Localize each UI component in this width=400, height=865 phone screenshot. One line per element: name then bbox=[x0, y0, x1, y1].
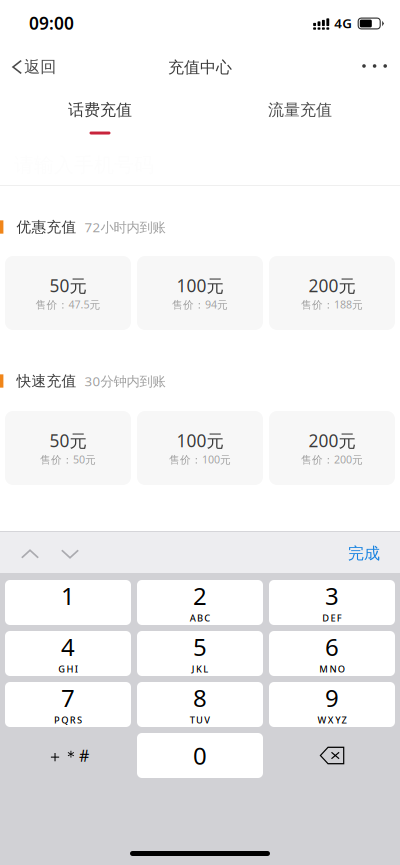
button[interactable]: 4 bbox=[5, 631, 131, 676]
button[interactable]: 话费充值 bbox=[0, 88, 200, 145]
staticText: 流量充值 bbox=[268, 100, 332, 120]
button[interactable]: 100元 bbox=[137, 411, 263, 485]
button[interactable]: 200元 bbox=[269, 256, 395, 330]
staticText: 售价：94元 bbox=[172, 297, 228, 311]
staticText: 话费充值 bbox=[68, 100, 132, 120]
staticText: 完成 bbox=[348, 544, 380, 563]
button[interactable]: 3 bbox=[269, 580, 395, 625]
staticText: JKL bbox=[192, 663, 208, 675]
staticText: 09:00 bbox=[29, 11, 74, 34]
staticText: TUV bbox=[190, 714, 210, 726]
button[interactable]: 200元 bbox=[269, 411, 395, 485]
button[interactable]: 1 bbox=[5, 580, 131, 625]
button[interactable]: Next field bbox=[50, 531, 90, 573]
button[interactable]: Delete bbox=[269, 733, 395, 778]
staticText: 50元 bbox=[49, 274, 86, 297]
button[interactable]: 9 bbox=[269, 682, 395, 727]
staticText: 200元 bbox=[308, 429, 355, 452]
staticText: 售价：188元 bbox=[301, 297, 363, 311]
staticText: 4G bbox=[334, 14, 352, 32]
staticText: WXYZ bbox=[318, 714, 346, 726]
staticText: 售价：47.5元 bbox=[35, 297, 100, 311]
button[interactable]: More bbox=[349, 44, 400, 88]
button[interactable]: 0 bbox=[137, 733, 263, 778]
staticText: 售价：200元 bbox=[301, 452, 363, 466]
button[interactable]: 6 bbox=[269, 631, 395, 676]
staticText: 5 bbox=[193, 631, 207, 663]
staticText: 9 bbox=[325, 682, 339, 714]
staticText: 30分钟内到账 bbox=[84, 372, 165, 390]
staticText: 售价：100元 bbox=[169, 452, 231, 466]
button[interactable]: 流量充值 bbox=[200, 88, 400, 145]
staticText: 4 bbox=[61, 631, 75, 663]
staticText: 100元 bbox=[176, 274, 223, 297]
button[interactable]: 完成 bbox=[334, 531, 400, 573]
staticText: 售价：50元 bbox=[40, 452, 96, 466]
button[interactable]: 50元 bbox=[5, 256, 131, 330]
staticText: 1 bbox=[61, 580, 75, 612]
staticText: 72小时内到账 bbox=[84, 218, 165, 236]
staticText: 6 bbox=[325, 631, 339, 663]
button[interactable]: 返回 bbox=[0, 44, 68, 88]
staticText: 50元 bbox=[49, 429, 86, 452]
button[interactable]: Previous field bbox=[0, 531, 50, 573]
staticText: MNO bbox=[319, 663, 345, 675]
staticText: ＋＊# bbox=[47, 745, 89, 766]
button[interactable]: 8 bbox=[137, 682, 263, 727]
button[interactable]: 7 bbox=[5, 682, 131, 727]
staticText: PQRS bbox=[54, 714, 82, 726]
staticText: DEF bbox=[322, 612, 342, 624]
staticText: 200元 bbox=[308, 274, 355, 297]
staticText: 2 bbox=[193, 580, 207, 612]
staticText: ABC bbox=[190, 612, 210, 624]
staticText: 0 bbox=[193, 740, 207, 771]
staticText: 7 bbox=[61, 682, 75, 714]
button[interactable]: 50元 bbox=[5, 411, 131, 485]
staticText: 充值中心 bbox=[168, 58, 232, 77]
staticText: 8 bbox=[193, 682, 207, 714]
button[interactable]: 100元 bbox=[137, 256, 263, 330]
staticText: 优惠充值 bbox=[16, 218, 76, 236]
staticText: 100元 bbox=[176, 429, 223, 452]
button[interactable]: 2 bbox=[137, 580, 263, 625]
button[interactable]: 5 bbox=[137, 631, 263, 676]
staticText: GHI bbox=[58, 663, 78, 675]
staticText: 3 bbox=[325, 580, 339, 612]
staticText: 快速充值 bbox=[16, 372, 76, 390]
staticText: 返回 bbox=[24, 57, 56, 77]
button[interactable]: Symbols bbox=[5, 733, 131, 778]
